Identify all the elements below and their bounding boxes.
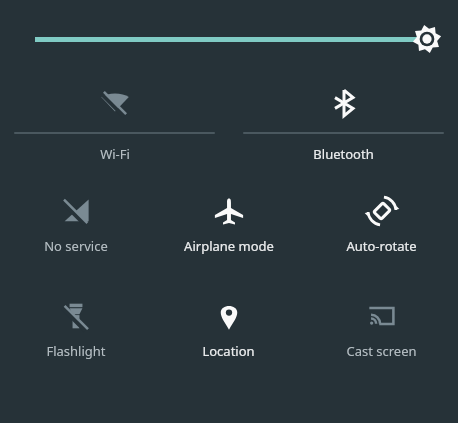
button[interactable]: Flashlight: [0, 287, 152, 392]
button[interactable]: Brightness: [0, 0, 458, 72]
button[interactable]: Bluetooth: [229, 72, 458, 182]
staticText: Auto-rotate: [346, 237, 417, 255]
button[interactable]: No service: [0, 182, 152, 287]
staticText: Bluetooth: [313, 145, 374, 163]
button[interactable]: Cast screen: [305, 287, 458, 392]
staticText: Cast screen: [346, 342, 417, 360]
button[interactable]: Location: [152, 287, 305, 392]
staticText: Location: [202, 342, 255, 360]
button[interactable]: Airplane mode: [152, 182, 305, 287]
staticText: No service: [44, 237, 108, 255]
button[interactable]: Auto-rotate: [305, 182, 458, 287]
staticText: Airplane mode: [184, 237, 274, 255]
button[interactable]: Wi-Fi: [0, 72, 229, 182]
staticText: Wi-Fi: [100, 145, 130, 163]
staticText: Flashlight: [46, 342, 106, 360]
